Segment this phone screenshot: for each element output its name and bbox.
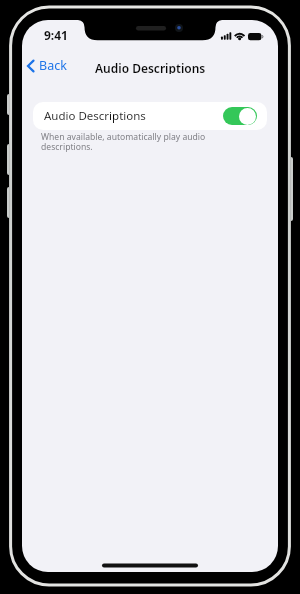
button[interactable] (223, 107, 257, 125)
staticText: Audio Descriptions (44, 108, 146, 124)
staticText: Audio Descriptions (95, 60, 206, 74)
button[interactable]: Audio Descriptions (33, 102, 267, 130)
staticText: 9:41 (44, 27, 68, 43)
staticText: When available, automatically play audio… (41, 131, 206, 153)
button[interactable]: Back (25, 57, 67, 74)
staticText: Back (39, 57, 67, 74)
